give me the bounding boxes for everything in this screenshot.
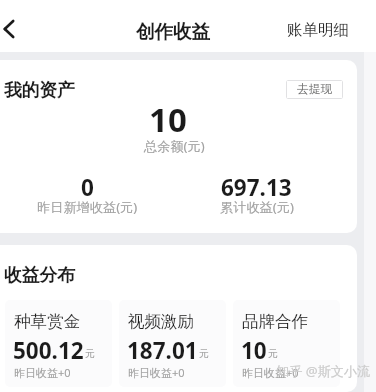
staticText: 昨日收益+0 (14, 365, 71, 380)
staticText: 昨日收益+0 (242, 365, 299, 380)
staticText: 昨日收益+0 (128, 365, 185, 380)
staticText: 元 (268, 347, 278, 360)
staticText: 0 (81, 172, 94, 203)
staticText: 697.13 (221, 172, 292, 203)
staticText: 视频激励 (128, 311, 194, 332)
button[interactable]: 去提现 (286, 80, 343, 99)
staticText: 总余额(元) (144, 137, 205, 155)
staticText: 收益分布 (4, 264, 75, 286)
staticText: 10 (241, 335, 267, 366)
staticText: 累计收益(元) (220, 198, 294, 216)
staticText: 500.12 (13, 335, 84, 366)
staticText: 种草赏金 (14, 311, 80, 332)
staticText: 知乎 @斯文小流 (276, 362, 371, 380)
button[interactable]: 视频激励 (119, 300, 226, 387)
staticText: 187.01 (127, 335, 198, 366)
button[interactable]: 账单明细 (287, 20, 349, 40)
staticText: 元 (199, 347, 209, 360)
staticText: 账单明细 (287, 20, 349, 40)
button[interactable]: Back (0, 11, 30, 41)
staticText: 品牌合作 (242, 311, 308, 332)
staticText: 元 (85, 347, 95, 360)
staticText: 去提现 (297, 82, 333, 97)
button[interactable]: 创作收益 (136, 20, 210, 43)
staticText: 昨日新增收益(元) (37, 198, 138, 216)
staticText: 创作收益 (136, 20, 210, 43)
staticText: 我的资产 (4, 79, 75, 101)
button[interactable]: 种草赏金 (5, 300, 112, 387)
button[interactable]: 品牌合作 (233, 300, 340, 387)
staticText: 10 (149, 97, 187, 142)
